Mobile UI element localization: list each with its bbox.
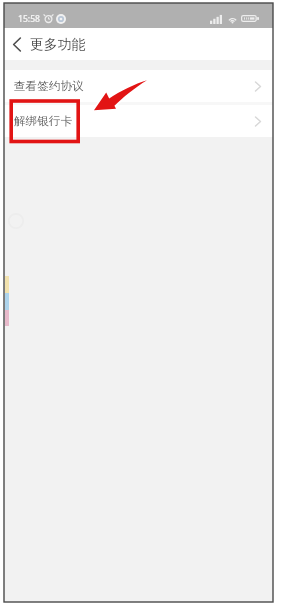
- staticText: 更多功能: [30, 36, 86, 53]
- button[interactable]: 查看签约协议: [4, 70, 273, 102]
- staticText: 解绑银行卡: [14, 114, 72, 129]
- staticText: 15:58: [18, 13, 41, 25]
- button[interactable]: 解绑银行卡: [4, 105, 273, 137]
- button[interactable]: Back: [4, 28, 30, 60]
- staticText: 查看签约协议: [14, 79, 84, 94]
